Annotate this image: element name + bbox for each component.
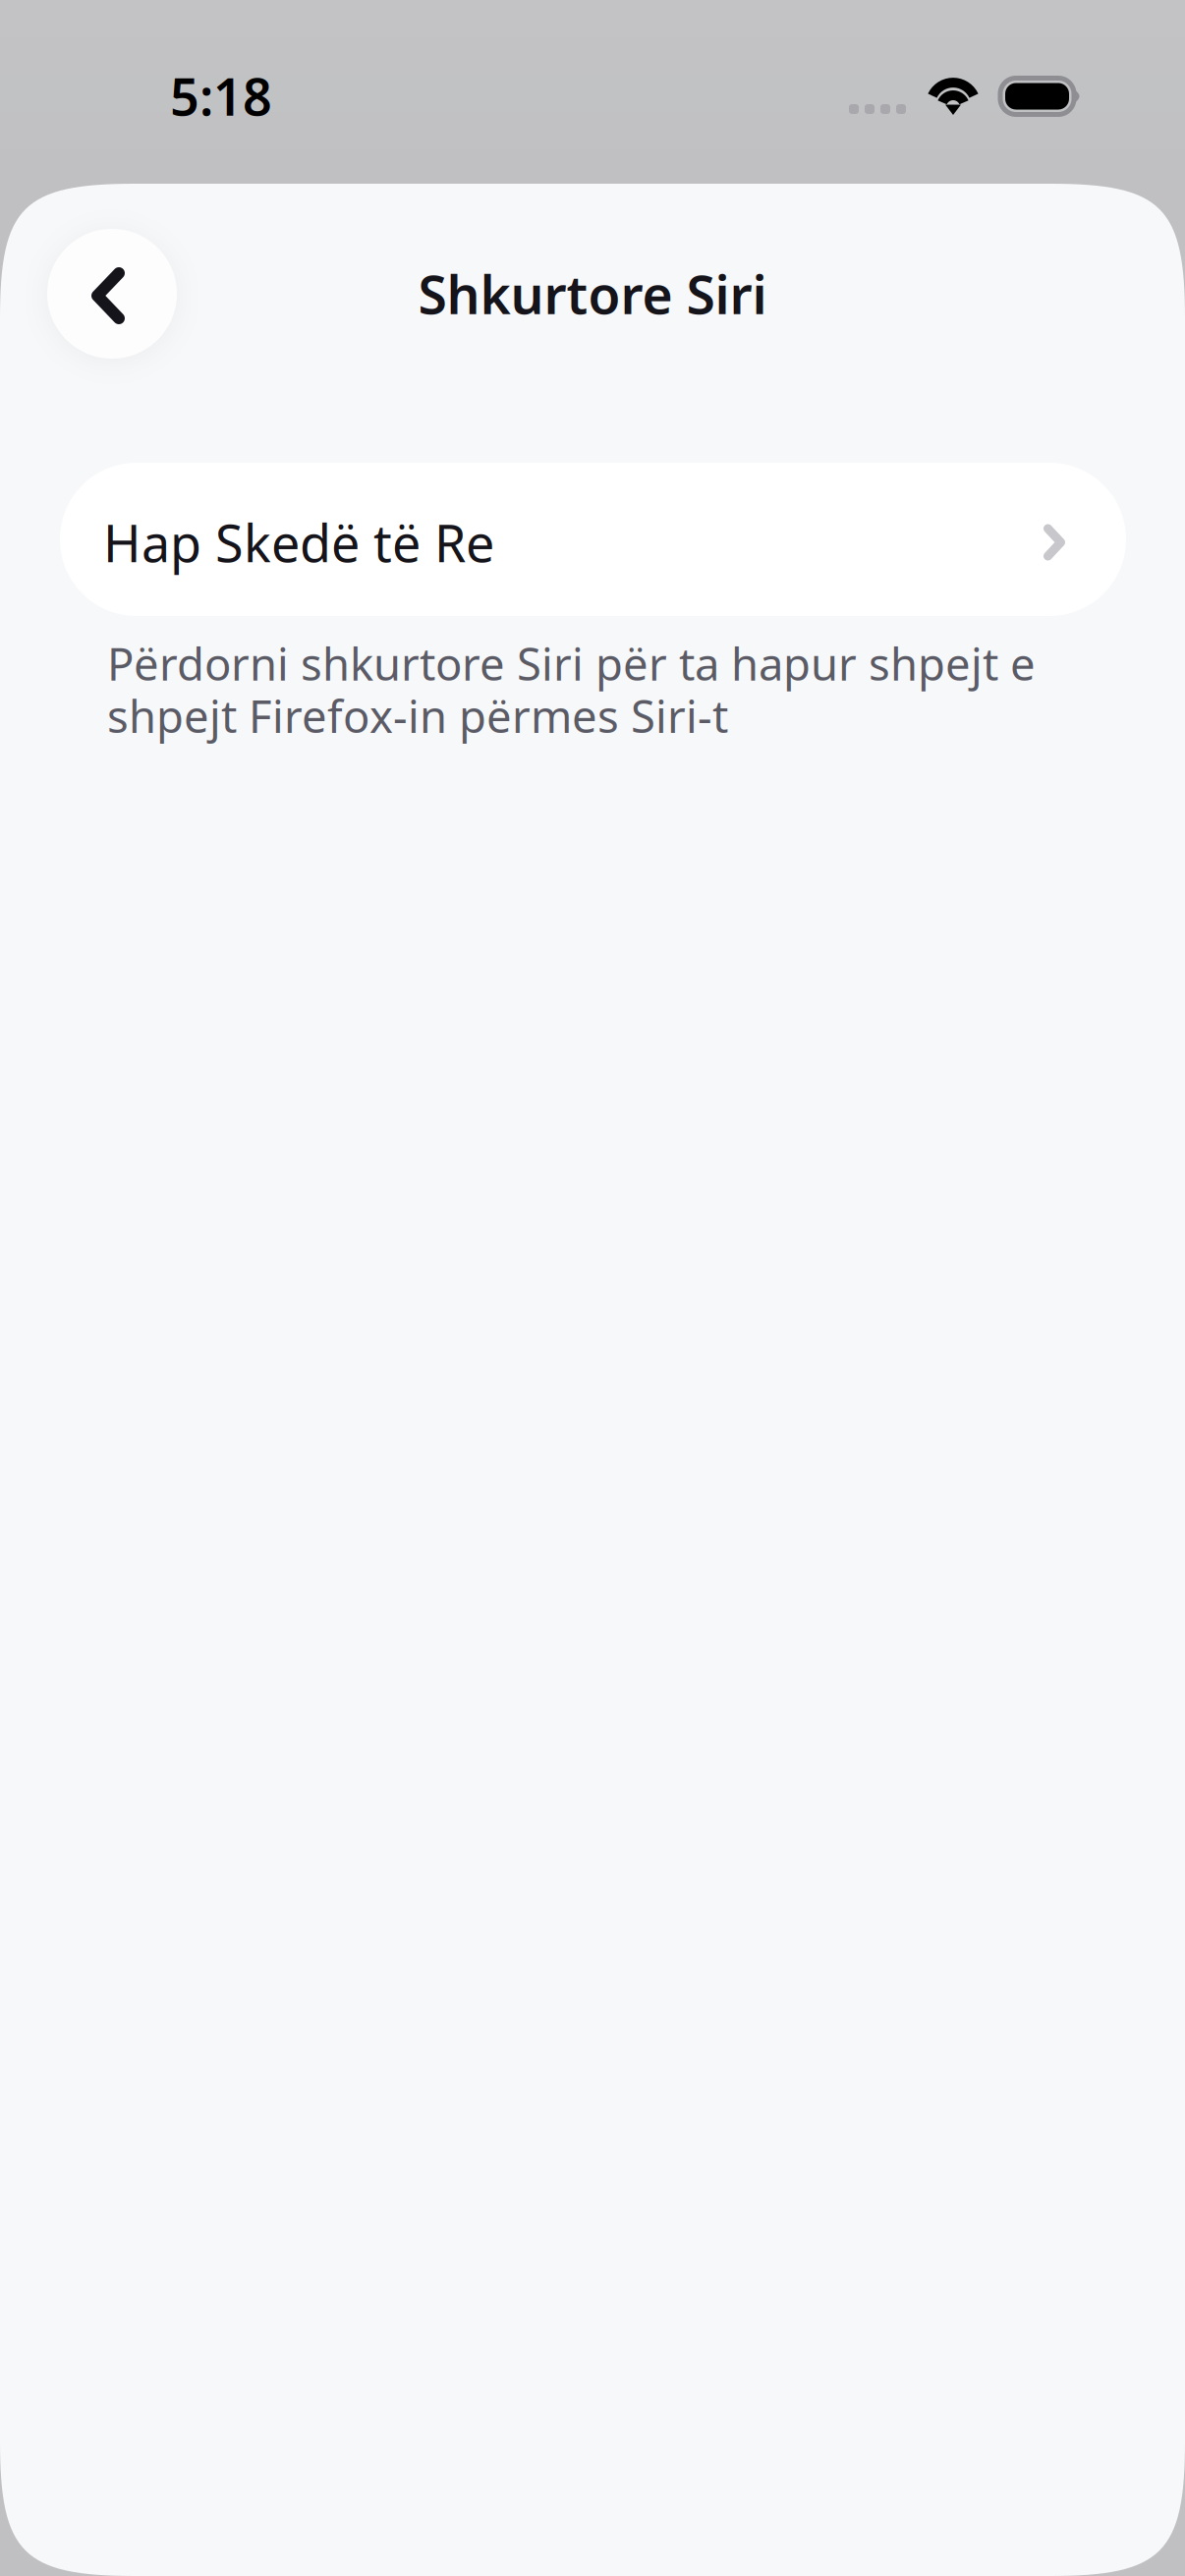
staticText: Shkurtore Siri	[418, 259, 767, 329]
staticText: 5:18	[170, 62, 272, 130]
button[interactable]: Hap Skedë të Re	[60, 463, 1126, 616]
staticText: Përdorni shkurtore Siri për ta hapur shp…	[107, 634, 1036, 745]
staticText: Hap Skedë të Re	[103, 508, 494, 576]
button[interactable]: Back	[47, 229, 177, 359]
